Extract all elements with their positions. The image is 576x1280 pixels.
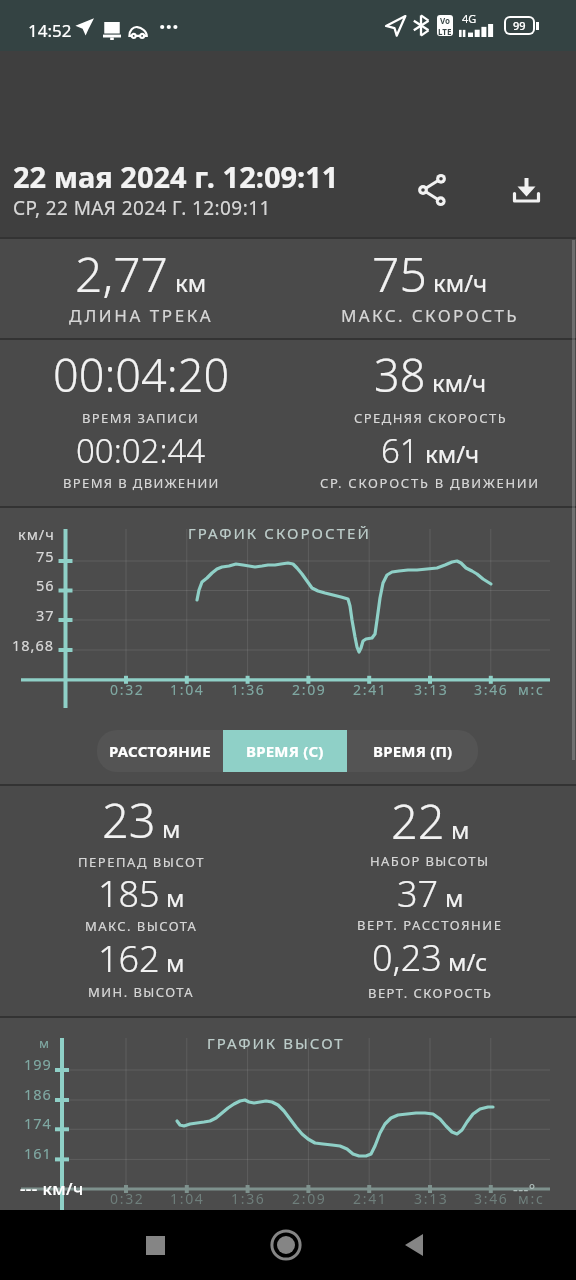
staticText: --- км/ч <box>20 1177 84 1200</box>
staticText: ВРЕМЯ В ДВИЖЕНИИ <box>63 474 220 492</box>
staticText: 61 <box>381 428 419 473</box>
staticText: м <box>445 881 464 914</box>
staticText: 0:32 <box>110 1189 145 1208</box>
staticText: МИН. ВЫСОТА <box>88 983 194 1001</box>
staticText: км/ч <box>432 366 487 399</box>
staticText: 37 <box>397 869 439 918</box>
button[interactable]: Назад <box>386 1217 442 1273</box>
staticText: ГРАФИК СКОРОСТЕЙ <box>188 523 371 543</box>
staticText: Vo <box>440 15 451 26</box>
staticText: м <box>39 1034 50 1052</box>
staticText: 00:04:20 <box>53 344 230 405</box>
staticText: 3:13 <box>414 1189 449 1208</box>
button[interactable]: ВРЕМЯ (С) <box>223 730 347 772</box>
button[interactable]: Домой <box>258 1217 314 1273</box>
staticText: 1:36 <box>231 1189 266 1208</box>
staticText: м <box>162 812 181 845</box>
staticText: НАБОР ВЫСОТЫ <box>370 852 490 870</box>
staticText: 23 <box>102 788 156 852</box>
button[interactable]: Поделиться <box>398 156 466 224</box>
staticText: 174 <box>24 1113 52 1133</box>
staticText: м <box>451 813 470 846</box>
staticText: СР, 22 МАЯ 2024 Г. 12:09:11 <box>13 195 271 221</box>
staticText: МАКС. ВЫСОТА <box>85 917 198 935</box>
button[interactable]: РАССТОЯНИЕ <box>97 730 223 772</box>
staticText: км <box>175 266 207 299</box>
staticText: LTE <box>438 26 452 36</box>
staticText: 185 <box>98 869 160 918</box>
staticText: 22 мая 2024 г. 12:09:11 <box>13 157 339 196</box>
staticText: 2:41 <box>353 680 388 699</box>
staticText: 75 <box>372 241 427 306</box>
staticText: 161 <box>24 1143 52 1163</box>
staticText: 00:02:44 <box>76 428 206 473</box>
staticText: 37 <box>36 605 55 625</box>
staticText: км/ч <box>425 437 480 470</box>
staticText: ВРЕМЯ (С) <box>246 741 324 761</box>
staticText: РАССТОЯНИЕ <box>109 741 211 761</box>
staticText: 56 <box>36 575 55 595</box>
staticText: СР. СКОРОСТЬ В ДВИЖЕНИИ <box>320 474 540 492</box>
staticText: 0,23 <box>372 933 442 982</box>
staticText: 75 <box>36 546 55 566</box>
staticText: ГРАФИК ВЫСОТ <box>207 1033 345 1053</box>
staticText: ВРЕМЯ (П) <box>373 741 453 761</box>
staticText: м:с <box>518 680 545 699</box>
staticText: 2:09 <box>292 1189 327 1208</box>
staticText: м/с <box>448 945 488 978</box>
staticText: 2:09 <box>292 680 327 699</box>
staticText: м <box>166 881 185 914</box>
staticText: 199 <box>24 1054 52 1074</box>
staticText: 2,77 <box>75 241 169 306</box>
staticText: ВЕРТ. РАССТОЯНИЕ <box>357 916 503 934</box>
staticText: СРЕДНЯЯ СКОРОСТЬ <box>354 409 507 427</box>
staticText: м <box>166 946 185 979</box>
staticText: км/ч <box>433 266 488 299</box>
staticText: 4G <box>462 11 477 26</box>
staticText: 162 <box>98 934 160 983</box>
staticText: ---° <box>513 1179 536 1199</box>
staticText: 18,68 <box>12 635 55 655</box>
staticText: км/ч <box>18 524 55 544</box>
staticText: ДЛИНА ТРЕКА <box>69 304 214 327</box>
staticText: 3:13 <box>414 680 449 699</box>
staticText: ВЕРТ. СКОРОСТЬ <box>368 984 493 1002</box>
staticText: ПЕРЕПАД ВЫСОТ <box>78 853 205 871</box>
button[interactable]: Скачать <box>492 156 560 224</box>
staticText: МАКС. СКОРОСТЬ <box>341 304 519 327</box>
staticText: 186 <box>24 1084 52 1104</box>
staticText: 3:46 <box>474 1189 509 1208</box>
staticText: 38 <box>374 344 426 405</box>
staticText: 0:32 <box>110 680 145 699</box>
staticText: 3:46 <box>474 680 509 699</box>
staticText: 1:04 <box>170 680 205 699</box>
staticText: ВРЕМЯ ЗАПИСИ <box>82 409 200 427</box>
staticText: 22 <box>391 789 445 853</box>
button[interactable]: ВРЕМЯ (П) <box>347 730 478 772</box>
button[interactable]: Недавние приложения <box>127 1217 183 1273</box>
staticText: 2:41 <box>353 1189 388 1208</box>
staticText: 1:04 <box>170 1189 205 1208</box>
staticText: м:с <box>518 1189 545 1208</box>
staticText: 99 <box>513 18 526 33</box>
staticText: 14:52 <box>28 19 72 42</box>
staticText: 1:36 <box>231 680 266 699</box>
